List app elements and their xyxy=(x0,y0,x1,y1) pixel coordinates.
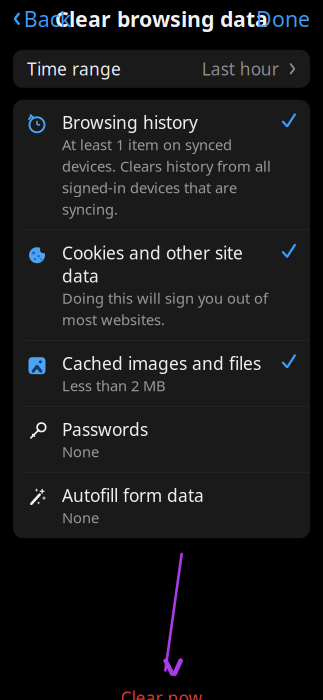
staticText: Back xyxy=(24,5,71,33)
button[interactable]: Time range xyxy=(13,50,310,88)
staticText: Done xyxy=(256,5,310,33)
button[interactable]: Cookies and other site data xyxy=(13,230,310,340)
staticText: Time range xyxy=(27,57,121,80)
staticText: Last hour xyxy=(202,57,279,80)
button[interactable]: Back xyxy=(3,0,81,41)
staticText: None xyxy=(62,442,99,461)
button[interactable]: Clear now xyxy=(104,680,218,700)
button[interactable]: Cached images and files xyxy=(13,341,310,406)
staticText: Clear now xyxy=(120,686,202,700)
staticText: Passwords xyxy=(62,418,148,441)
staticText: Doing this will sign you out of most web… xyxy=(62,288,268,329)
staticText: Cookies and other site data xyxy=(62,241,243,287)
button[interactable]: Done xyxy=(246,0,320,41)
staticText: Autofill form data xyxy=(62,484,204,507)
button[interactable]: Browsing history xyxy=(13,100,310,230)
staticText: Less than 2 MB xyxy=(62,376,166,395)
staticText: Clear browsing data xyxy=(55,5,268,33)
staticText: None xyxy=(62,508,99,527)
staticText: Cached images and files xyxy=(62,352,261,375)
button[interactable]: Autofill form data xyxy=(13,473,310,538)
staticText: At least 1 item on synced devices. Clear… xyxy=(62,135,271,219)
button[interactable]: Passwords xyxy=(13,407,310,472)
staticText: Browsing history xyxy=(62,111,198,134)
